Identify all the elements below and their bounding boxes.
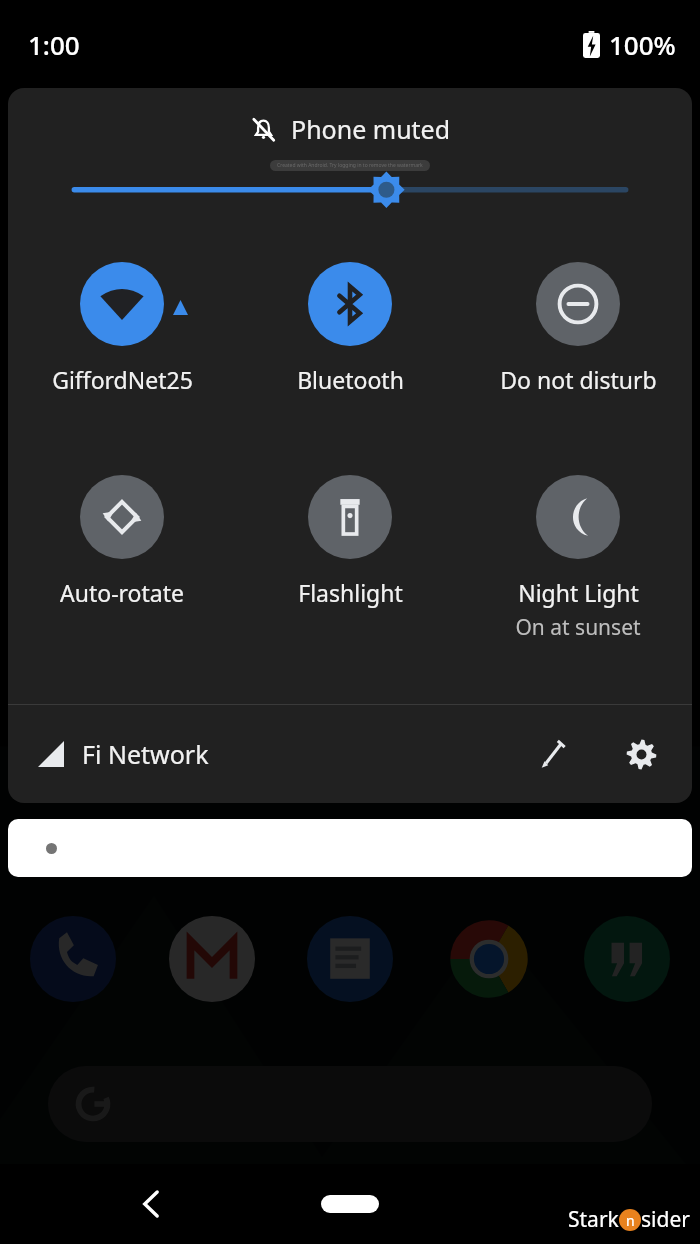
- button[interactable]: Brightness: [8, 160, 692, 208]
- button[interactable]: Edit tiles: [524, 725, 582, 783]
- staticText: Stark: [568, 1205, 619, 1234]
- button[interactable]: Settings: [612, 725, 670, 783]
- button[interactable]: Bluetooth: [236, 262, 464, 395]
- button[interactable]: Flashlight: [236, 475, 464, 608]
- button[interactable]: [30, 916, 116, 1002]
- button[interactable]: [169, 916, 255, 1002]
- staticText: Auto-rotate: [60, 577, 184, 608]
- button[interactable]: Back: [124, 1176, 180, 1232]
- button[interactable]: [584, 916, 670, 1002]
- button[interactable]: [307, 916, 393, 1002]
- button[interactable]: Do not disturb: [464, 262, 692, 395]
- button[interactable]: GiffordNet25: [8, 262, 236, 395]
- staticText: Created with Android. Try logging in to …: [277, 162, 423, 169]
- staticText: Fi Network: [82, 737, 209, 771]
- button[interactable]: Home: [321, 1195, 379, 1213]
- staticText: Flashlight: [298, 577, 403, 608]
- button[interactable]: Fi Network: [38, 737, 209, 771]
- staticText: Bluetooth: [297, 364, 404, 395]
- staticText: Phone muted: [291, 112, 451, 146]
- button[interactable]: [446, 916, 532, 1002]
- staticText: GiffordNet25: [52, 364, 193, 395]
- staticText: 1:00: [28, 27, 80, 62]
- staticText: Night Light: [518, 577, 639, 608]
- staticText: On at sunset: [515, 613, 641, 642]
- staticText: n: [626, 1211, 635, 1230]
- staticText: 100%: [609, 27, 676, 62]
- staticText: Do not disturb: [500, 364, 657, 395]
- button[interactable]: Auto-rotate: [8, 475, 236, 608]
- staticText: sider: [641, 1205, 690, 1234]
- button[interactable]: Night Light: [464, 475, 692, 642]
- button[interactable]: [8, 819, 692, 877]
